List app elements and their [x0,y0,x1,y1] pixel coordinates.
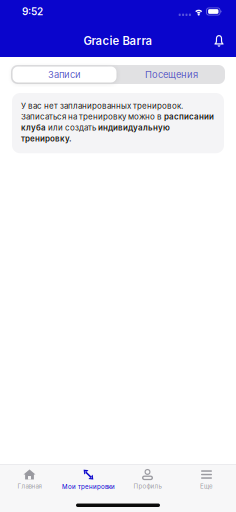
button[interactable]: Мои тренировки [59,467,118,491]
staticText: Мои тренировки [62,483,115,490]
staticText: Gracie Barra [83,34,152,48]
staticText: 9:52 [22,5,43,18]
button[interactable]: Notifications [206,27,232,53]
button[interactable]: Еще [177,467,236,491]
staticText: Посещения [145,69,198,80]
staticText: Записи [48,69,81,80]
staticText: Профиль [133,482,161,490]
staticText: Главная [17,482,41,490]
button[interactable]: Главная [0,467,59,491]
button[interactable]: Профиль [118,467,177,491]
staticText: У вас нет запланированных тренировок. За… [21,101,214,143]
button[interactable]: Посещения [118,65,225,84]
button[interactable]: Записи [11,65,118,84]
staticText: Еще [200,482,213,490]
